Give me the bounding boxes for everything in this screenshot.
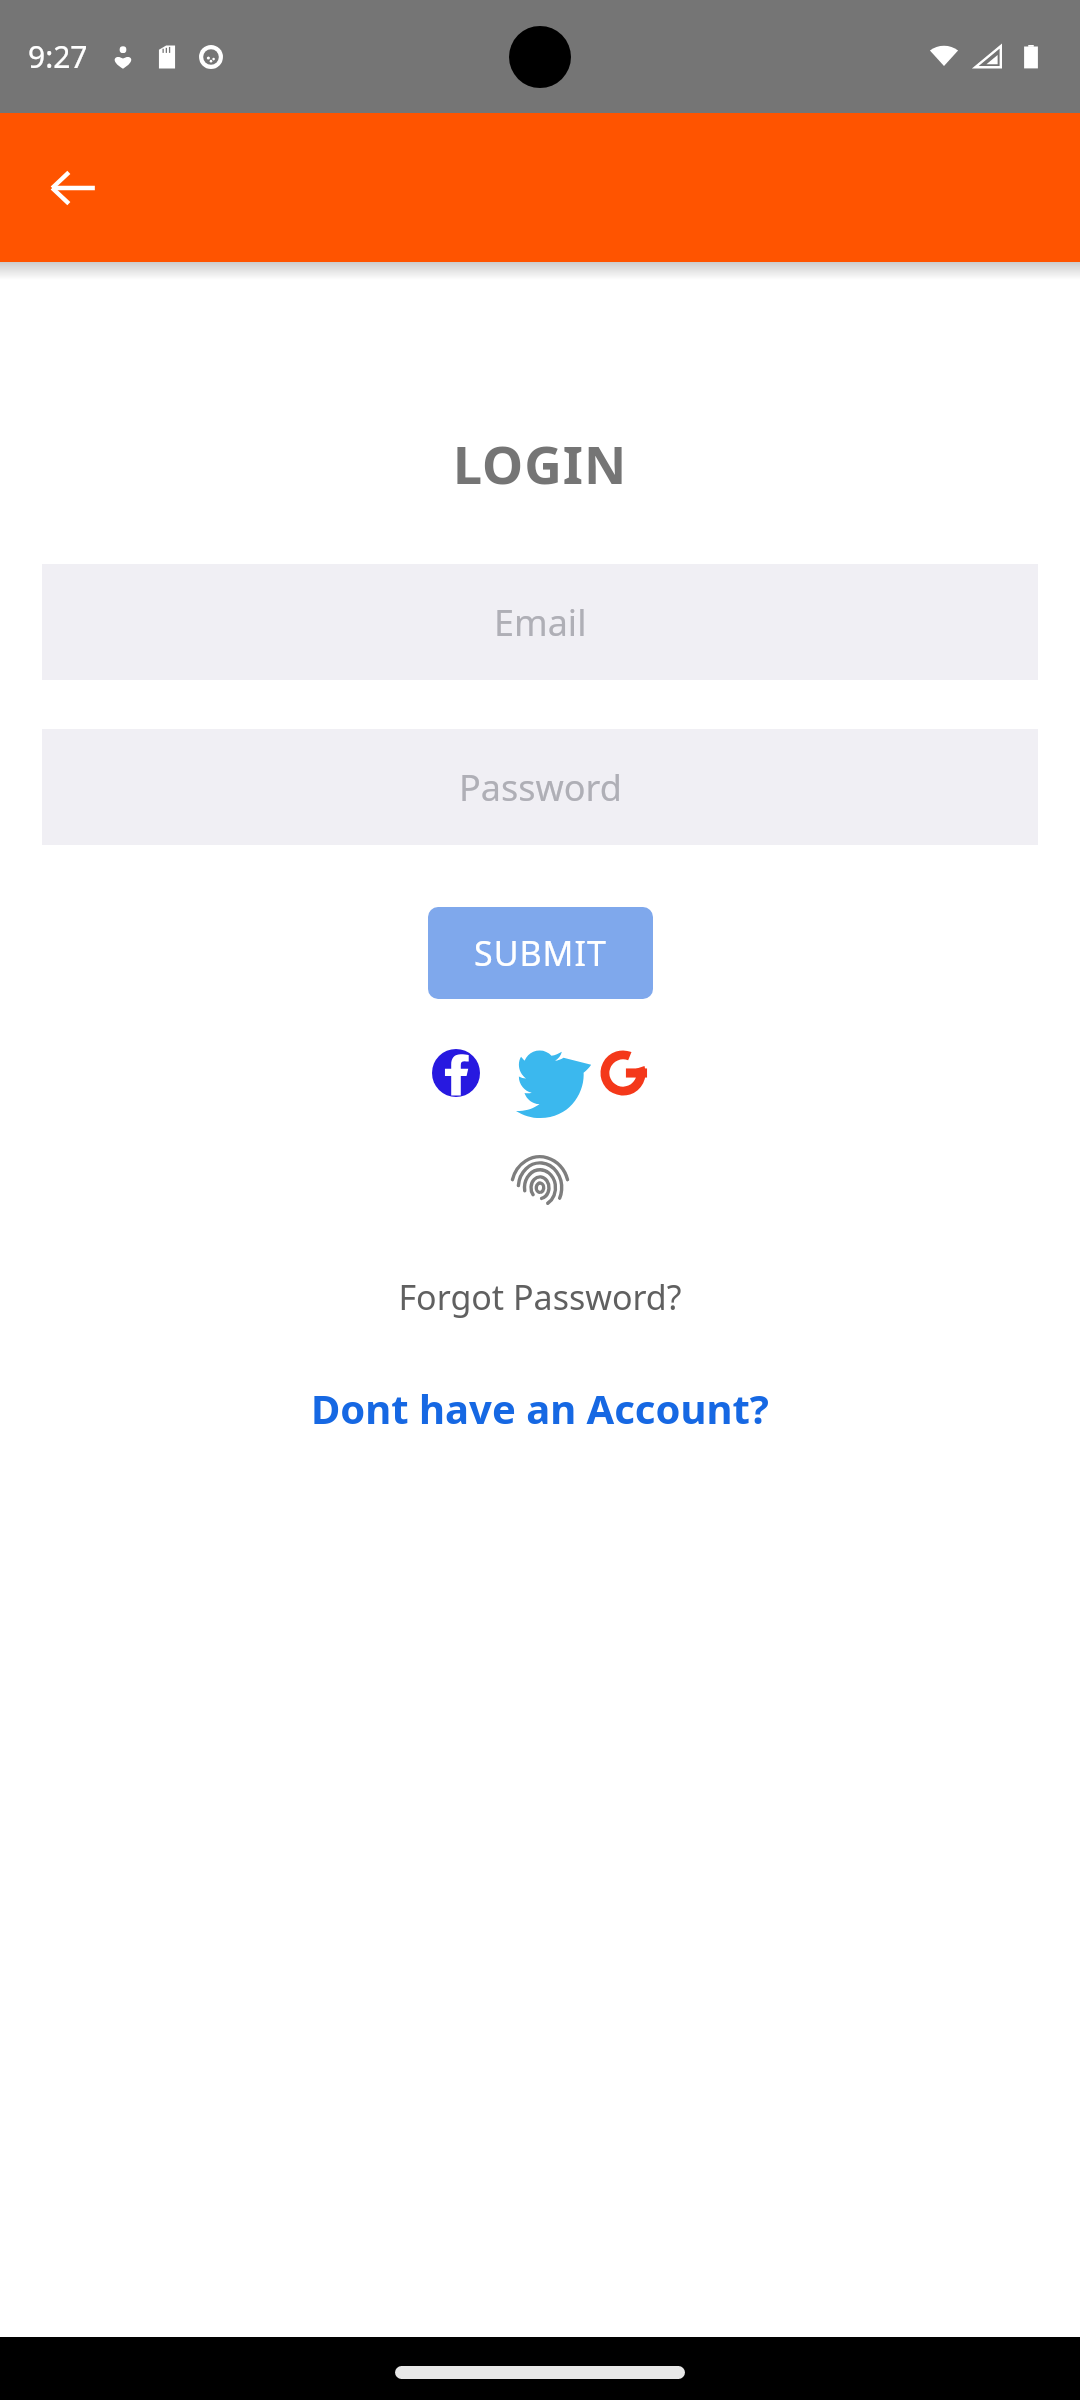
button[interactable]: Dont have an Account? (291, 1373, 789, 1443)
button[interactable]: Fingerprint login (500, 1144, 580, 1224)
button[interactable]: Forgot Password? (378, 1266, 702, 1328)
staticText: LOGIN (453, 428, 628, 499)
button[interactable]: Email (42, 564, 1038, 680)
button[interactable]: Sign in with Twitter (509, 1042, 571, 1104)
staticText: SUBMIT (474, 930, 607, 976)
staticText: Dont have an Account? (311, 1381, 769, 1435)
button[interactable]: Sign in with Google (593, 1042, 655, 1104)
button[interactable]: Password (42, 729, 1038, 845)
staticText: Password (459, 763, 622, 812)
staticText: Email (494, 598, 587, 647)
button[interactable]: Sign in with Facebook (425, 1042, 487, 1104)
button[interactable]: SUBMIT (428, 907, 653, 999)
staticText: 9:27 (28, 36, 88, 77)
staticText: Forgot Password? (398, 1274, 682, 1320)
button[interactable]: Back (26, 141, 120, 235)
